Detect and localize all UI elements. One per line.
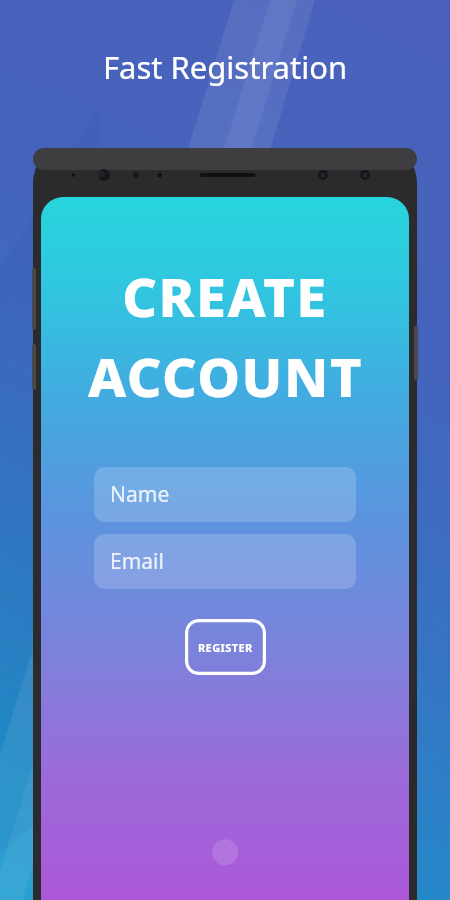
staticText: REGISTER [198,640,253,655]
button[interactable]: Name [94,467,356,522]
button[interactable]: REGISTER [185,619,266,675]
staticText: ACCOUNT [88,339,363,413]
staticText: Fast Registration [0,46,450,88]
staticText: Email [110,547,164,576]
staticText: Name [110,480,170,509]
staticText: CREATE [122,259,328,333]
button[interactable]: Email [94,534,356,589]
